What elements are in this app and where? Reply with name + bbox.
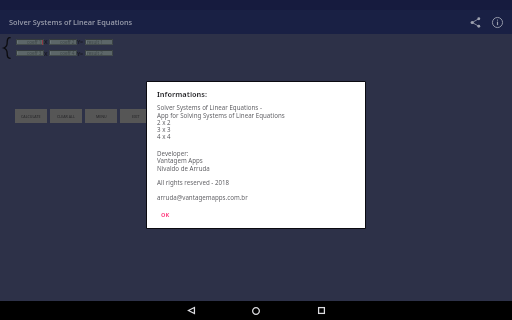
staticText: Vantagem Apps	[157, 156, 203, 164]
staticText: 4 x 4	[157, 132, 171, 140]
button[interactable]: coeff 4	[49, 50, 77, 56]
staticText: CALCULATE	[21, 114, 41, 119]
staticText: coeff 3	[27, 50, 42, 56]
staticText: MENU	[96, 114, 107, 119]
button[interactable]: coeff 1	[16, 39, 44, 45]
staticText: result 1	[87, 39, 103, 45]
staticText: Informations:	[157, 89, 208, 99]
button[interactable]: MENU	[85, 109, 117, 123]
button[interactable]: coeff 2	[49, 39, 77, 45]
button[interactable]: CLEAR ALL	[50, 109, 82, 123]
button[interactable]: Information	[487, 12, 507, 32]
staticText: Y	[77, 38, 81, 45]
staticText: result 2	[87, 50, 103, 56]
button[interactable]: result 2	[85, 50, 113, 56]
button[interactable]: Recent apps	[301, 301, 341, 320]
button[interactable]: coeff 3	[16, 50, 44, 56]
staticText: Y	[77, 50, 81, 57]
staticText: coeff 1	[27, 39, 42, 45]
staticText: =	[80, 38, 84, 45]
button[interactable]: Back	[171, 301, 211, 320]
staticText: CLEAR ALL	[57, 114, 75, 119]
button[interactable]: result 1	[85, 39, 113, 45]
staticText: EXIT	[132, 114, 140, 119]
staticText: App for Solving Systems of Linear Equati…	[157, 111, 285, 119]
staticText: Solver Systems of Linear Equations -	[157, 103, 262, 111]
staticText: arruda@vantagemapps.com.br	[157, 193, 248, 201]
staticText: OK	[161, 211, 170, 219]
staticText: 3 x 3	[157, 125, 171, 133]
staticText: Nivaldo de Arruda	[157, 164, 210, 172]
staticText: 2 x 2	[157, 118, 171, 126]
button[interactable]: CALCULATE	[15, 109, 47, 123]
staticText: Solver Systems of Linear Equations	[9, 17, 133, 27]
staticText: Developer:	[157, 149, 189, 157]
button[interactable]: EXIT	[120, 109, 152, 123]
button[interactable]: OK	[155, 208, 175, 222]
staticText: coeff 4	[60, 50, 75, 56]
staticText: coeff 2	[60, 39, 75, 45]
staticText: All rights reserved - 2018	[157, 178, 230, 186]
staticText: =	[80, 50, 84, 57]
staticText: X	[44, 38, 48, 45]
button[interactable]: Share	[465, 12, 485, 32]
staticText: X	[44, 50, 48, 57]
button[interactable]: Home	[236, 301, 276, 320]
